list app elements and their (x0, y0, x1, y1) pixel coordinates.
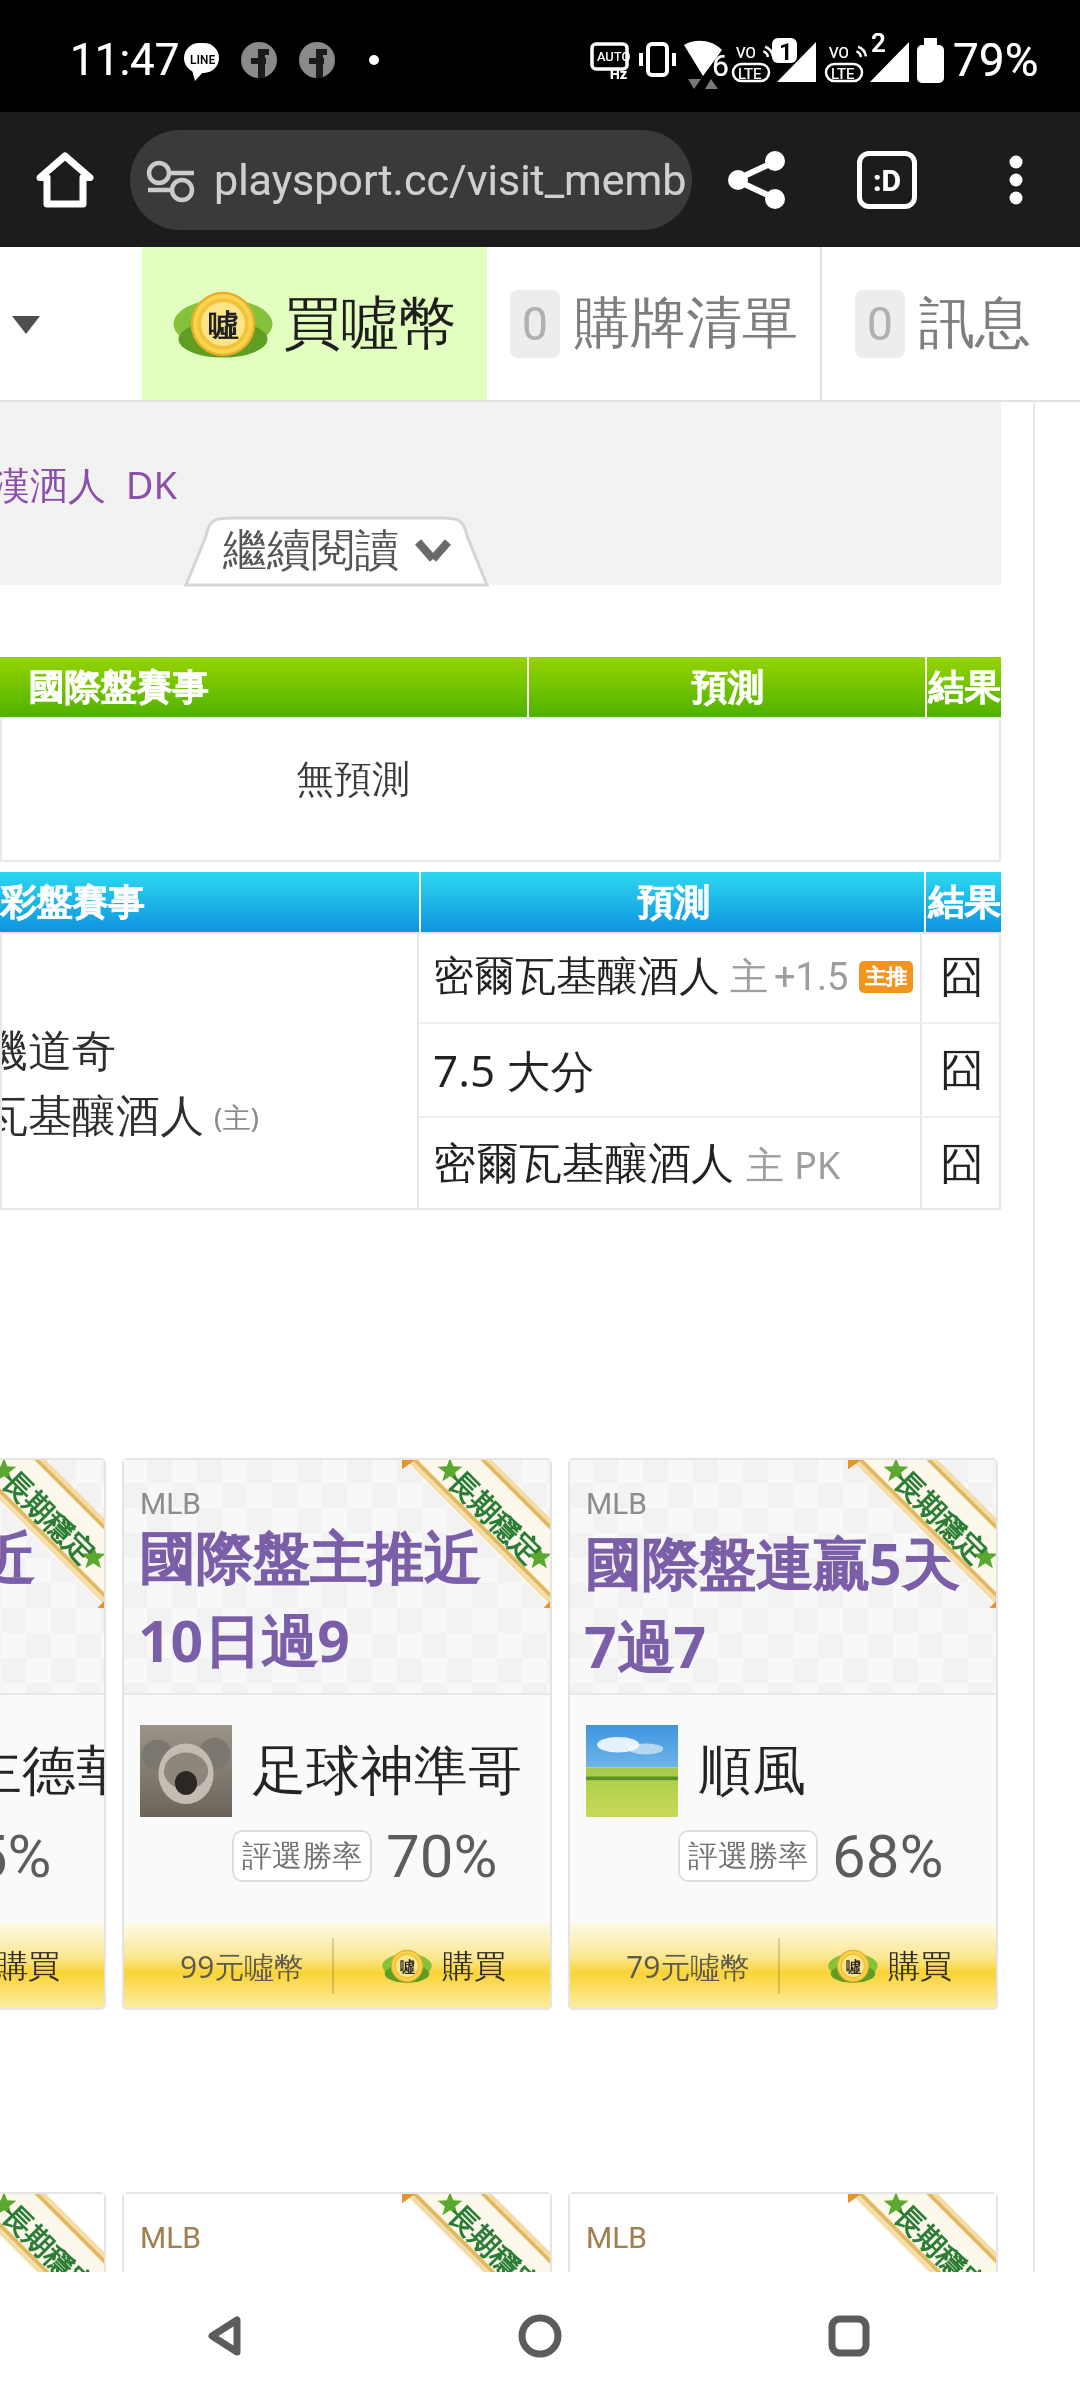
button[interactable]: Recent apps (784, 2272, 914, 2400)
staticText: LTE (831, 65, 855, 83)
staticText: 79% (953, 33, 1039, 87)
staticText: 結果 (928, 665, 1000, 710)
button[interactable]: 繼續閱讀 (186, 516, 487, 585)
staticText: 繼續閱讀 (223, 523, 399, 578)
staticText: 漢洒人 DK (0, 458, 178, 510)
button[interactable]: Share (692, 112, 822, 247)
staticText: 噓 (846, 1958, 861, 1977)
staticText: 噓 (208, 307, 238, 345)
staticText: 68% (832, 1821, 944, 1891)
staticText: :D (873, 163, 901, 198)
staticText: 2 (871, 28, 886, 58)
staticText: 長期穩定 (440, 2198, 548, 2288)
staticText: 長期穩定 (0, 2198, 102, 2288)
staticText: 長期穩定 (886, 2198, 994, 2288)
staticText: 長期穩定 (440, 1464, 548, 1572)
staticText: 國際盤主推近 10日過9 (138, 1524, 480, 1679)
staticText: MLB (140, 1486, 202, 1521)
staticText: MLB (140, 2220, 202, 2255)
staticText: 長期穩定 (0, 1464, 102, 1572)
staticText: 主 (730, 953, 768, 1001)
staticText: 順風 (698, 1737, 806, 1805)
button[interactable]: 79元噓幣 (568, 1922, 998, 2010)
staticText: MLB (586, 2220, 648, 2255)
staticText: 購買 (442, 1946, 506, 1986)
staticText: VO (736, 44, 756, 62)
staticText: 密爾瓦基釀酒人 (433, 951, 720, 1003)
staticText: 足球神準哥 (252, 1737, 522, 1805)
staticText: 長期穩定 (886, 1464, 994, 1572)
staticText: LINE (190, 53, 216, 67)
staticText: 無預測 (296, 755, 410, 803)
button[interactable]: Home (0, 112, 130, 247)
staticText: 囧 (940, 1043, 984, 1098)
staticText: 囧 (940, 950, 984, 1005)
staticText: 國際盤主推近 10日過9 (0, 1524, 34, 1679)
button[interactable]: 99元噓幣 (0, 1922, 106, 2010)
button[interactable]: Back (160, 2272, 290, 2400)
staticText: 買噓幣 (283, 287, 457, 360)
button[interactable]: More options (952, 112, 1080, 247)
staticText: 預測 (637, 880, 709, 925)
staticText: 噓 (400, 1958, 415, 1977)
staticText: 評選勝率 (242, 1837, 362, 1875)
staticText: 0 (867, 297, 893, 351)
staticText: 國際盤賽事 (28, 665, 208, 710)
button[interactable]: playsport.cc/visit_memb (130, 130, 692, 230)
staticText: 運彩盤賽事 (0, 880, 144, 925)
staticText: Hz (610, 66, 628, 82)
staticText: 1 (779, 38, 793, 66)
staticText: 主 PK (746, 1138, 841, 1190)
staticText: 結果 (928, 880, 1000, 925)
staticText: 70% (386, 1821, 498, 1891)
staticText: 65% (0, 1821, 52, 1891)
button[interactable]: Menu (0, 247, 142, 400)
staticText: 0 (522, 297, 548, 351)
staticText: 11:47 (70, 34, 180, 86)
staticText: 密爾瓦基釀酒人 (0, 1089, 204, 1144)
staticText: 99元噓幣 (180, 1946, 305, 1987)
staticText: playsport.cc/visit_memb (214, 155, 687, 205)
staticText: 密爾瓦基釀酒人 (433, 1137, 734, 1191)
staticText: +1.5 (774, 955, 849, 1000)
staticText: 預測 (691, 665, 763, 710)
staticText: 購買 (0, 1946, 60, 1986)
staticText: AUTO (597, 49, 631, 64)
button[interactable]: Home (475, 2272, 605, 2400)
staticText: VO (829, 44, 849, 62)
button[interactable]: 0 (487, 247, 820, 400)
staticText: (主) (214, 1098, 259, 1136)
button[interactable]: 0 (822, 247, 1080, 400)
staticText: 79元噓幣 (626, 1946, 751, 1987)
staticText: MLB (586, 1486, 648, 1521)
button[interactable]: 噓 (142, 247, 487, 400)
staticText: 6 (712, 48, 729, 83)
staticText: 主推 (865, 964, 907, 990)
staticText: 囧 (940, 1137, 984, 1192)
staticText: 購牌清單 (574, 288, 798, 359)
staticText: 訊息 (919, 288, 1031, 359)
staticText: 洛杉磯道奇 (0, 1024, 116, 1079)
staticText: 評選勝率 (688, 1837, 808, 1875)
staticText: 購買 (888, 1946, 952, 1986)
button[interactable]: 99元噓幣 (122, 1922, 552, 2010)
staticText: LTE (738, 65, 762, 83)
staticText: 阿倫教主德華 (0, 1737, 106, 1805)
staticText: 國際盤連贏5天 7過7 (584, 1524, 959, 1685)
button[interactable]: Tabs (822, 112, 952, 247)
staticText: 7.5 大分 (433, 1040, 595, 1100)
